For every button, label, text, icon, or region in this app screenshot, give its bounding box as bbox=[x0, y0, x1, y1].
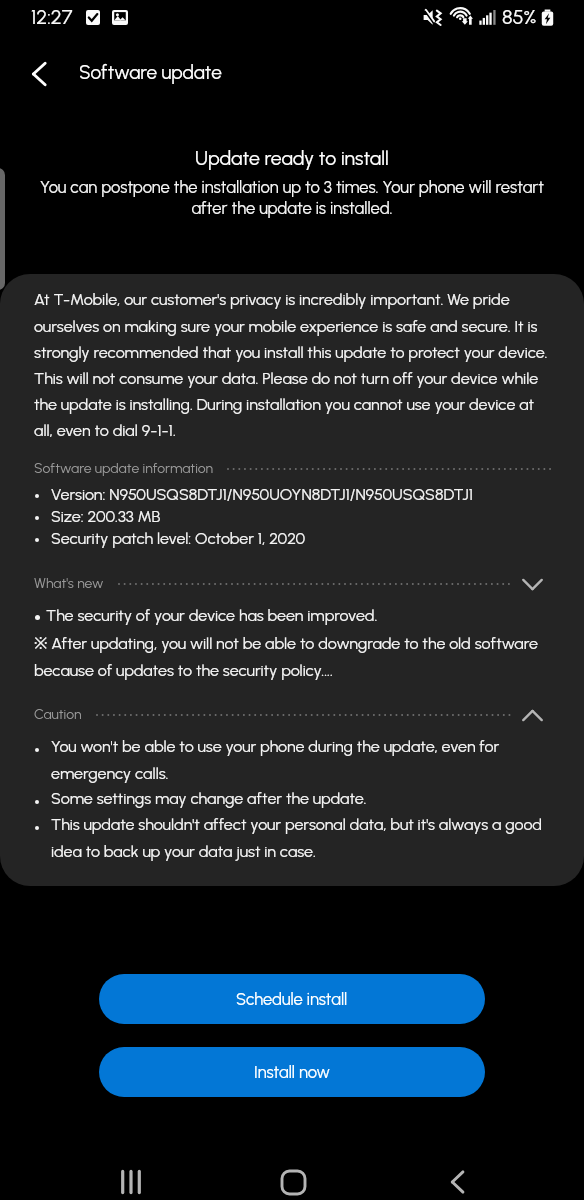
button[interactable]: Back bbox=[431, 1156, 483, 1200]
staticText: Caution bbox=[34, 706, 82, 723]
staticText: At T-Mobile, our customer's privacy is i… bbox=[34, 290, 553, 440]
staticText: The security of your device has been imp… bbox=[46, 606, 378, 625]
staticText: What's new bbox=[34, 575, 104, 592]
button[interactable]: Expand section bbox=[516, 573, 548, 595]
button[interactable]: Home bbox=[267, 1156, 319, 1200]
staticText: Security patch level: October 1, 2020 bbox=[51, 529, 306, 548]
staticText: 12:27 bbox=[31, 5, 73, 29]
button[interactable]: Recent apps bbox=[105, 1156, 157, 1200]
staticText: 85% bbox=[502, 5, 537, 29]
staticText: You won't be able to use your phone duri… bbox=[51, 737, 553, 783]
staticText: ※ After updating, you will not be able t… bbox=[34, 632, 553, 680]
staticText: Install now bbox=[254, 1062, 330, 1082]
staticText: Version: N950USQS8DTJ1/N950UOYN8DTJ1/N95… bbox=[51, 485, 473, 504]
button[interactable]: Install now bbox=[99, 1047, 485, 1097]
staticText: Software update bbox=[79, 61, 222, 84]
staticText: Update ready to install bbox=[195, 146, 389, 169]
staticText: Size: 200.33 MB bbox=[51, 507, 161, 526]
staticText: You can postpone the installation up to … bbox=[24, 177, 560, 218]
staticText: This update shouldn't affect your person… bbox=[51, 815, 553, 861]
button[interactable]: Collapse section bbox=[516, 704, 548, 726]
button[interactable]: Navigate up bbox=[14, 44, 64, 104]
staticText: Software update information bbox=[34, 460, 213, 477]
staticText: Schedule install bbox=[236, 989, 348, 1009]
button[interactable]: Schedule install bbox=[99, 974, 485, 1024]
staticText: Some settings may change after the updat… bbox=[51, 789, 367, 808]
